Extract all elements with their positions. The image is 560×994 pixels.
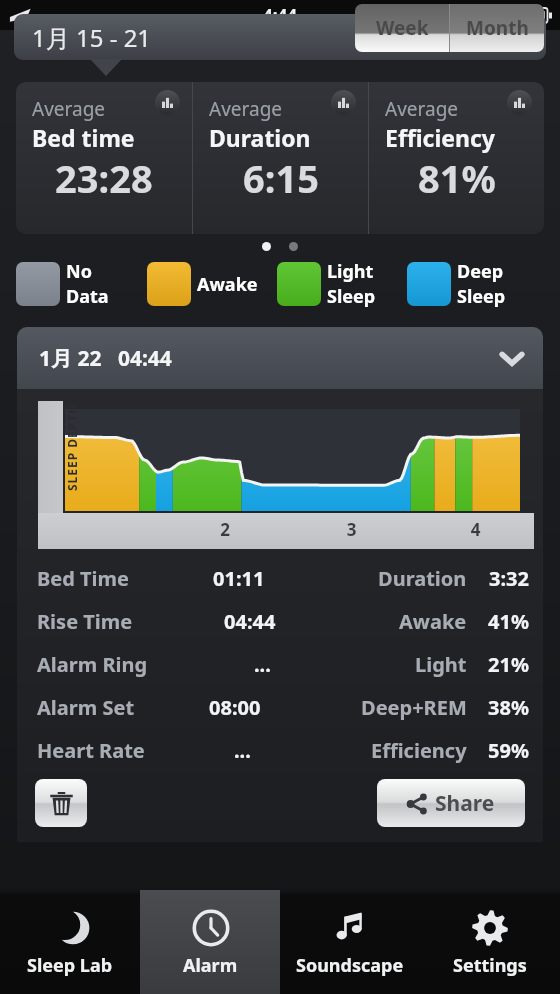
staticText: Share <box>435 789 495 818</box>
staticText: Deep <box>457 259 504 284</box>
staticText: Duration <box>209 122 311 153</box>
button[interactable]: Sleep Lab <box>0 890 140 994</box>
staticText: Alarm Ring <box>37 651 148 678</box>
button[interactable]: Soundscape <box>280 890 420 994</box>
button[interactable]: Show chart <box>507 90 532 115</box>
other: Soundscape <box>331 909 369 947</box>
button[interactable]: Alarm <box>140 890 280 994</box>
staticText: 4:44 <box>263 4 297 27</box>
button[interactable]: 1月 15 - 21 <box>14 14 546 60</box>
staticText: 4 <box>417 518 534 541</box>
staticText: 23:28 <box>55 152 153 204</box>
staticText: Average <box>32 96 106 122</box>
button[interactable]: Heart Rate <box>17 729 543 772</box>
staticText: 38% <box>481 694 529 721</box>
staticText: 3 <box>286 518 417 541</box>
staticText: Sleep Lab <box>27 953 113 978</box>
staticText: ... <box>234 737 251 764</box>
staticText: Rise Time <box>37 608 133 635</box>
staticText: Duration <box>378 565 467 592</box>
staticText: Bed Time <box>37 565 130 592</box>
staticText: 2 <box>164 518 286 541</box>
staticText: 59% <box>481 737 529 764</box>
staticText: Month <box>466 15 529 41</box>
button[interactable]: Share <box>377 779 525 827</box>
staticText: 01:11 <box>213 565 265 592</box>
other: Sleep Lab <box>51 909 89 947</box>
button[interactable]: Week <box>355 4 449 52</box>
staticText: 21% <box>481 651 529 678</box>
staticText: 04:44 <box>224 608 276 635</box>
button[interactable]: Settings <box>420 890 560 994</box>
staticText: Data <box>66 284 109 309</box>
staticText: Heart Rate <box>37 737 145 764</box>
staticText: Alarm Set <box>37 694 135 721</box>
button[interactable]: Alarm Ring <box>17 643 543 686</box>
staticText: 6:15 <box>243 152 319 204</box>
button[interactable]: Light <box>277 259 407 309</box>
button[interactable]: Rise Time <box>17 600 543 643</box>
staticText: Average <box>209 96 283 122</box>
button[interactable]: Delete <box>35 779 87 827</box>
button[interactable]: Average <box>369 82 544 234</box>
staticText: Settings <box>453 953 527 978</box>
staticText: 81% <box>418 152 496 204</box>
staticText: 1月 22 04:44 <box>39 344 172 373</box>
staticText: Alarm <box>183 953 238 978</box>
other: Alarm <box>192 909 230 947</box>
button[interactable]: Alarm Set <box>17 686 543 729</box>
staticText: 1月 15 - 21 <box>32 21 152 54</box>
staticText: Average <box>385 96 459 122</box>
staticText: Soundscape <box>296 953 404 978</box>
staticText: Bed time <box>32 122 135 153</box>
staticText: No <box>66 259 92 284</box>
staticText: Awake <box>197 272 258 297</box>
staticText: 100% <box>475 4 517 26</box>
button[interactable]: Month <box>450 4 544 52</box>
button[interactable]: No <box>16 259 147 309</box>
staticText: 3:32 <box>481 565 529 592</box>
button[interactable]: Show chart <box>155 90 180 115</box>
staticText: Light <box>327 259 374 284</box>
staticText: Efficiency <box>385 122 495 153</box>
staticText: Sleep <box>457 284 506 309</box>
staticText: Sleep <box>327 284 376 309</box>
button[interactable]: Average <box>193 82 368 234</box>
other: Collapse <box>499 345 525 371</box>
button[interactable]: Awake <box>147 262 277 306</box>
staticText: Efficiency <box>371 737 467 764</box>
button[interactable]: 1月 22 04:44 <box>17 327 543 389</box>
staticText: 08:00 <box>209 694 261 721</box>
staticText: Deep+REM <box>361 694 467 721</box>
staticText: Light <box>415 651 467 678</box>
button[interactable]: Bed Time <box>17 557 543 600</box>
staticText: Awake <box>399 608 467 635</box>
button[interactable]: Deep <box>407 259 544 309</box>
staticText: SLEEP DEPTH <box>64 403 80 491</box>
staticText: 41% <box>481 608 529 635</box>
button[interactable]: Show chart <box>331 90 356 115</box>
staticText: ... <box>254 651 271 678</box>
staticText: Week <box>376 15 429 41</box>
other: Settings <box>471 909 509 947</box>
button[interactable]: Average <box>16 82 192 234</box>
